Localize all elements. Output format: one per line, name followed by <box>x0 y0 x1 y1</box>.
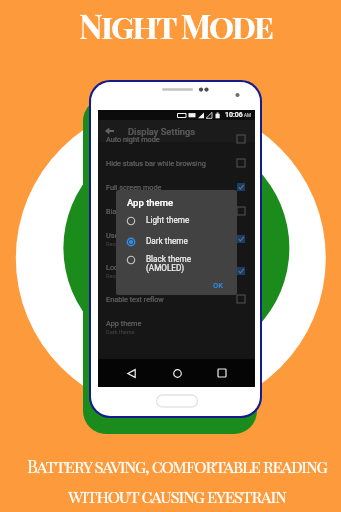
staticText: Lock screen orientation <box>106 263 183 272</box>
button[interactable]: Full screen mode <box>98 175 255 199</box>
button[interactable]: Black background <box>98 199 255 223</box>
button[interactable]: OK <box>213 281 223 290</box>
button[interactable]: Light theme <box>126 216 234 226</box>
staticText: AM <box>244 113 251 118</box>
staticText: Full screen mode <box>106 183 162 192</box>
button[interactable]: Recents <box>209 360 235 386</box>
staticText: Recommended <box>106 273 144 280</box>
staticText: Light theme <box>146 215 190 225</box>
button[interactable]: Black theme (AMOLED) <box>126 255 234 274</box>
button[interactable]: Hide status bar while browsing <box>98 151 255 175</box>
staticText: App theme <box>127 197 174 208</box>
staticText: 10:06 <box>225 111 243 119</box>
staticText: Hide status bar while browsing <box>106 159 206 168</box>
staticText: Display Settings <box>128 126 196 137</box>
button[interactable]: Dark theme <box>126 237 234 247</box>
staticText: Use volume keys <box>106 231 161 240</box>
staticText: OK <box>213 281 223 290</box>
button[interactable]: Auto night mode <box>98 127 255 151</box>
button[interactable]: Use volume keys <box>98 223 255 255</box>
button[interactable]: Lock screen orientation <box>98 255 255 287</box>
staticText: Enable text reflow <box>106 295 164 304</box>
staticText: Black theme (AMOLED) <box>146 254 192 273</box>
button[interactable]: Home <box>164 360 190 386</box>
button[interactable]: Back <box>98 120 120 142</box>
staticText: Dark theme <box>106 329 135 336</box>
staticText: Recommended for e-ink <box>106 241 166 248</box>
staticText: App theme <box>106 319 142 328</box>
staticText: Dark theme <box>146 236 188 246</box>
staticText: Battery saving, comfortable reading <box>27 455 327 478</box>
button[interactable]: App theme <box>98 311 255 343</box>
staticText: without causing eyestrain <box>68 485 286 508</box>
button[interactable]: Back <box>118 360 144 386</box>
staticText: Auto night mode <box>106 135 160 144</box>
button[interactable]: Enable text reflow <box>98 287 255 311</box>
staticText: Night Mode <box>79 3 272 47</box>
staticText: Black background <box>106 207 164 216</box>
